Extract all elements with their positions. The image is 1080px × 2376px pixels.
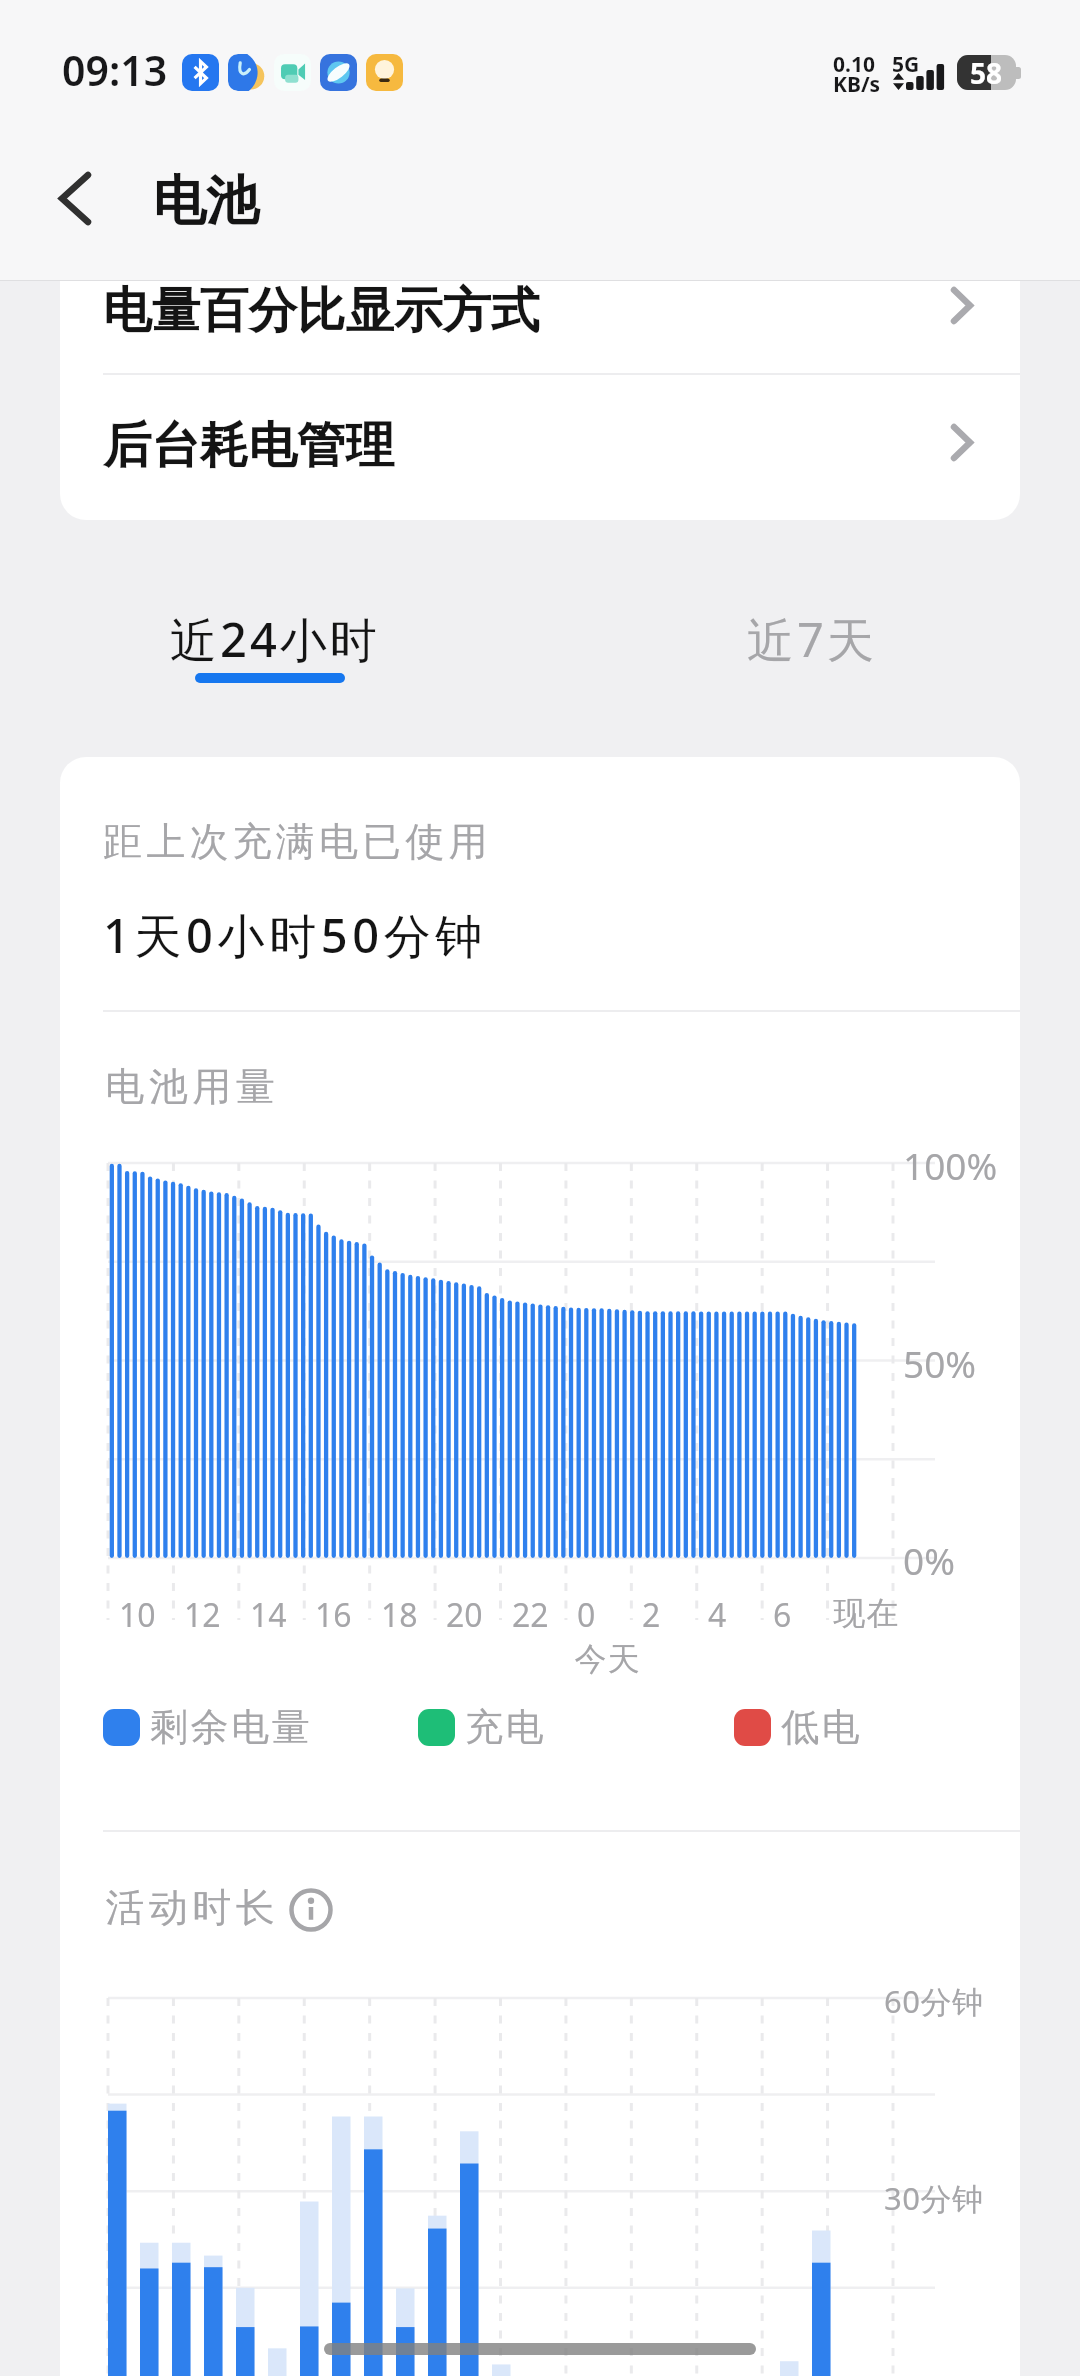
staticText: 低电 (780, 1703, 861, 1751)
staticText: 16 (315, 1593, 352, 1637)
staticText: 电池用量 (103, 1062, 277, 1111)
staticText: 60分钟 (884, 1980, 984, 2022)
staticText: 50% (903, 1338, 977, 1388)
staticText: 30分钟 (884, 2177, 984, 2219)
staticText: 20 (446, 1593, 483, 1637)
staticText: KB/s (833, 70, 881, 99)
staticText: 10 (119, 1593, 156, 1637)
staticText: 22 (512, 1593, 549, 1637)
button[interactable]: 近7天 (600, 600, 1020, 700)
staticText: 6 (773, 1593, 792, 1637)
staticText: 电池 (153, 168, 259, 235)
staticText: 14 (250, 1593, 287, 1637)
staticText: 1天0小时50分钟 (103, 903, 487, 967)
staticText: 后台耗电管理 (103, 415, 394, 476)
staticText: 充电 (464, 1703, 545, 1751)
button[interactable]: 近24小时 (60, 600, 480, 700)
button[interactable]: 后台耗电管理 (60, 374, 1020, 520)
staticText: 58 (970, 55, 1003, 89)
staticText: 距上次充满电已使用 (103, 817, 492, 866)
staticText: 电量百分比显示方式 (103, 281, 540, 341)
staticText: 100% (903, 1140, 998, 1190)
staticText: 12 (184, 1593, 221, 1637)
staticText: 0.10 (833, 50, 875, 79)
staticText: 09:13 (62, 42, 168, 98)
staticText: 0% (903, 1535, 955, 1585)
button[interactable]: About activity duration (289, 1888, 333, 1932)
staticText: 4 (708, 1593, 727, 1637)
staticText: 2 (642, 1593, 661, 1637)
staticText: 0 (577, 1593, 596, 1637)
staticText: 近24小时 (170, 607, 380, 671)
button[interactable]: Back (35, 158, 115, 238)
staticText: 今天 (574, 1639, 640, 1679)
staticText: 近7天 (747, 607, 877, 671)
staticText: 18 (381, 1593, 418, 1637)
staticText: 5G (892, 50, 920, 79)
button[interactable]: 电量百分比显示方式 (60, 281, 1020, 373)
staticText: 剩余电量 (149, 1703, 311, 1751)
staticText: 活动时长 (103, 1883, 277, 1932)
staticText: 现在 (833, 1593, 899, 1633)
